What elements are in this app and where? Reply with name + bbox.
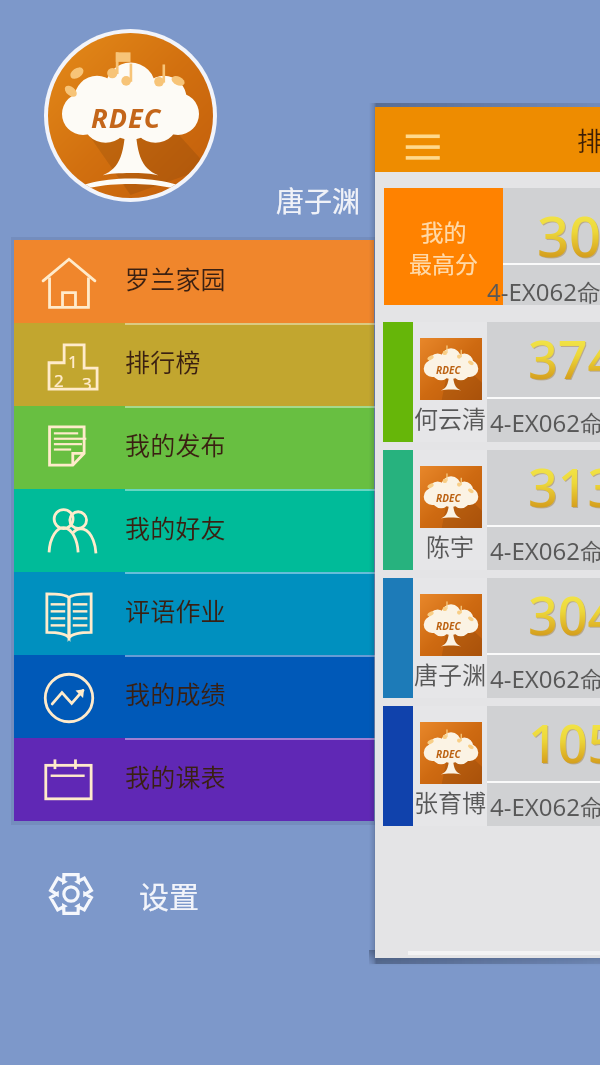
staticText: 304: [529, 580, 600, 651]
staticText: 313: [528, 451, 600, 522]
staticText: 评语作业: [125, 592, 226, 628]
button[interactable]: Open navigation menu: [397, 117, 443, 163]
staticText: RDEC: [436, 491, 461, 505]
staticText: 2: [54, 369, 64, 392]
button[interactable]: 1: [14, 323, 374, 406]
staticText: 陈宇: [426, 528, 474, 560]
staticText: 何云清: [414, 400, 486, 432]
staticText: 我的成绩: [125, 675, 226, 711]
staticText: 313: [529, 452, 600, 523]
staticText: 我的发布: [125, 426, 226, 462]
staticText: 唐子渊: [414, 656, 486, 688]
staticText: 304: [528, 579, 600, 650]
staticText: 排行榜: [125, 343, 201, 379]
staticText: 4-EX062命运: [490, 662, 600, 695]
staticText: 1: [68, 350, 78, 373]
button[interactable]: 罗兰家园: [14, 240, 374, 323]
staticText: 排行榜: [577, 121, 600, 159]
button[interactable]: RDEC: [383, 706, 600, 826]
staticText: 我的好友: [125, 509, 226, 545]
staticText: 唐子渊: [276, 180, 361, 221]
staticText: 374: [529, 324, 600, 395]
staticText: RDEC: [436, 619, 461, 633]
staticText: 罗兰家园: [125, 260, 226, 296]
staticText: 4-EX062命运: [490, 534, 600, 567]
staticText: 我的课表: [125, 758, 226, 794]
staticText: 张育博: [414, 784, 486, 816]
button[interactable]: RDEC: [383, 450, 600, 570]
button[interactable]: 我的发布: [14, 406, 374, 489]
staticText: RDEC: [436, 747, 461, 761]
staticText: 4-EX062命运: [490, 406, 600, 439]
button[interactable]: 我的好友: [14, 489, 374, 572]
button[interactable]: 我的 最高分: [384, 188, 503, 305]
staticText: 设置: [139, 873, 199, 916]
staticText: 4-EX062命运: [490, 790, 600, 823]
button[interactable]: 我的课表: [14, 738, 374, 821]
button[interactable]: 设置: [14, 858, 374, 930]
staticText: 304: [537, 197, 600, 273]
button[interactable]: 我的成绩: [14, 655, 374, 738]
staticText: 我的 最高分: [409, 214, 478, 279]
staticText: 4-EX062命运: [487, 275, 600, 308]
staticText: 105: [528, 707, 600, 778]
staticText: RDEC: [436, 363, 461, 377]
button[interactable]: RDEC: [383, 322, 600, 442]
staticText: 3: [82, 372, 92, 395]
staticText: RDEC: [91, 99, 162, 136]
button[interactable]: 评语作业: [14, 572, 374, 655]
staticText: 304: [538, 198, 600, 274]
staticText: 374: [528, 323, 600, 394]
staticText: 105: [529, 708, 600, 779]
button[interactable]: RDEC: [383, 578, 600, 698]
